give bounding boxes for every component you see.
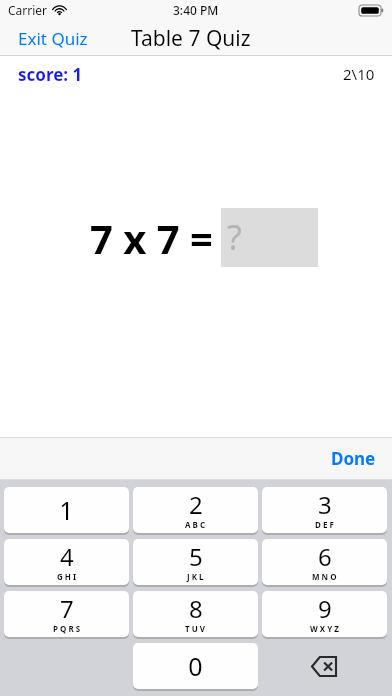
button[interactable]: 2: [133, 487, 258, 533]
staticText: P Q R S: [53, 623, 81, 634]
button[interactable]: 8: [133, 591, 258, 637]
staticText: 6: [318, 540, 332, 573]
staticText: 1: [59, 493, 74, 527]
staticText: ?: [227, 214, 242, 260]
button[interactable]: 6: [262, 539, 387, 585]
staticText: J K L: [187, 571, 204, 582]
staticText: 9: [318, 592, 332, 625]
staticText: 8: [189, 592, 203, 625]
staticText: Exit Quiz: [18, 27, 88, 50]
button[interactable]: 3: [262, 487, 387, 533]
staticText: Carrier: [8, 2, 48, 18]
staticText: score: 1: [18, 63, 83, 86]
staticText: 2: [189, 488, 203, 521]
button[interactable]: 0: [133, 643, 258, 689]
staticText: W X Y Z: [310, 623, 339, 634]
button[interactable]: 4: [4, 539, 129, 585]
button[interactable]: Done: [315, 441, 392, 476]
button[interactable]: Delete: [262, 643, 387, 689]
staticText: T U V: [185, 623, 206, 634]
staticText: 2\10: [343, 64, 375, 84]
button[interactable]: 1: [4, 487, 129, 533]
staticText: 3: [318, 488, 332, 521]
staticText: 0: [188, 649, 203, 683]
button[interactable]: 9: [262, 591, 387, 637]
staticText: A B C: [185, 519, 206, 530]
button[interactable]: Exit Quiz: [0, 23, 96, 54]
staticText: 4: [60, 540, 74, 573]
staticText: 7 x 7 =: [90, 211, 213, 265]
staticText: D E F: [315, 519, 334, 530]
button[interactable]: 7: [4, 591, 129, 637]
staticText: Table 7 Quiz: [131, 24, 251, 53]
staticText: G H I: [57, 571, 77, 582]
staticText: 3:40 PM: [173, 2, 219, 18]
staticText: M N O: [312, 571, 337, 582]
staticText: 7: [60, 592, 74, 625]
staticText: Done: [331, 447, 376, 470]
button[interactable]: 5: [133, 539, 258, 585]
staticText: 5: [189, 540, 203, 573]
button[interactable]: ?: [221, 208, 318, 267]
